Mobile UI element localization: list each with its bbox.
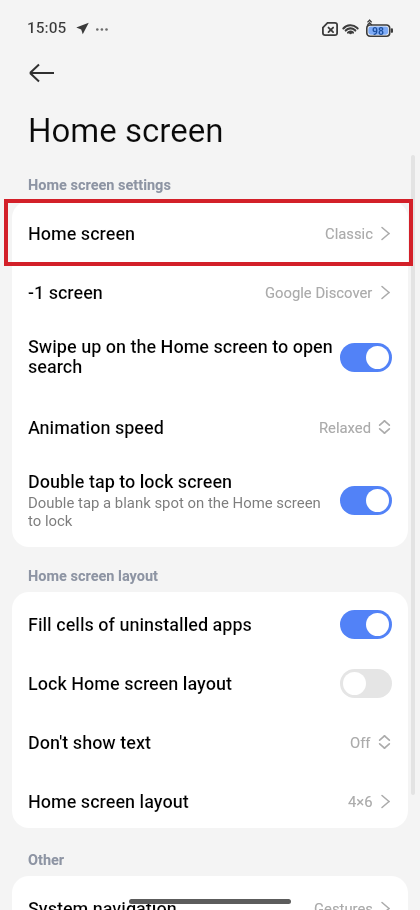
staticText: Home screen settings — [28, 177, 171, 194]
staticText: Google Discover — [265, 284, 373, 301]
button[interactable]: Toggle — [340, 669, 392, 698]
staticText: Swipe up on the Home screen to open sear… — [28, 336, 336, 378]
staticText: Don't show text — [28, 732, 350, 753]
button[interactable]: Fill cells of uninstalled apps — [12, 592, 408, 651]
staticText: Double tap a blank spot on the Home scre… — [28, 494, 336, 530]
staticText: System navigation — [28, 898, 314, 910]
button[interactable]: System navigation — [12, 876, 408, 910]
staticText: Home screen — [28, 223, 325, 244]
button[interactable]: Toggle — [340, 610, 392, 639]
button[interactable]: Toggle — [340, 343, 392, 372]
staticText: Other — [28, 852, 65, 869]
button[interactable]: Don't show text — [12, 710, 408, 769]
button[interactable]: Home screen layout — [12, 769, 408, 828]
staticText: Home screen — [28, 111, 224, 150]
staticText: 15:05 — [27, 19, 67, 37]
button[interactable]: Back — [19, 56, 63, 89]
staticText: Fill cells of uninstalled apps — [28, 614, 252, 635]
button[interactable]: Animation speed — [12, 395, 408, 454]
staticText: Home screen layout — [28, 568, 158, 585]
button[interactable]: Home screen — [12, 201, 408, 260]
staticText: Off — [350, 734, 371, 751]
staticText: 4×6 — [348, 793, 373, 810]
button[interactable]: -1 screen — [12, 260, 408, 319]
staticText: Double tap to lock screen — [28, 471, 233, 492]
button[interactable]: Double tap to lock screen — [12, 454, 408, 547]
staticText: Animation speed — [28, 417, 319, 438]
staticText: 98 — [372, 25, 385, 37]
staticText: Home screen layout — [28, 791, 348, 812]
staticText: -1 screen — [28, 282, 265, 303]
staticText: Gestures — [314, 900, 373, 910]
button[interactable]: Swipe up on the Home screen to open sear… — [12, 319, 408, 395]
staticText: Relaxed — [319, 419, 371, 436]
button[interactable]: Toggle — [340, 486, 392, 515]
button[interactable]: Lock Home screen layout — [12, 651, 408, 710]
staticText: Lock Home screen layout — [28, 673, 232, 694]
staticText: Classic — [325, 225, 373, 242]
